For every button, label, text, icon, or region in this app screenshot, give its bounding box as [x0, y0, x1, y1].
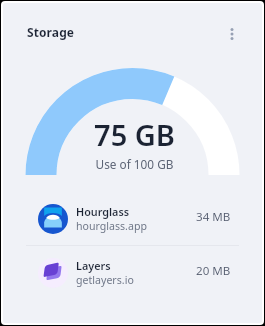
staticText: 75 GB [5, 115, 262, 154]
staticText: getlayers.io [76, 273, 134, 287]
staticText: hourglass.app [76, 219, 147, 233]
button[interactable]: Hourglass [3, 193, 262, 243]
button[interactable]: More options [220, 22, 244, 46]
staticText: Use of 100 GB [5, 156, 262, 172]
staticText: Storage [27, 24, 75, 40]
button[interactable]: Layers [3, 247, 262, 297]
staticText: Layers [76, 258, 111, 273]
staticText: 20 MB [196, 263, 231, 279]
staticText: 34 MB [196, 209, 231, 225]
staticText: Hourglass [76, 204, 130, 219]
